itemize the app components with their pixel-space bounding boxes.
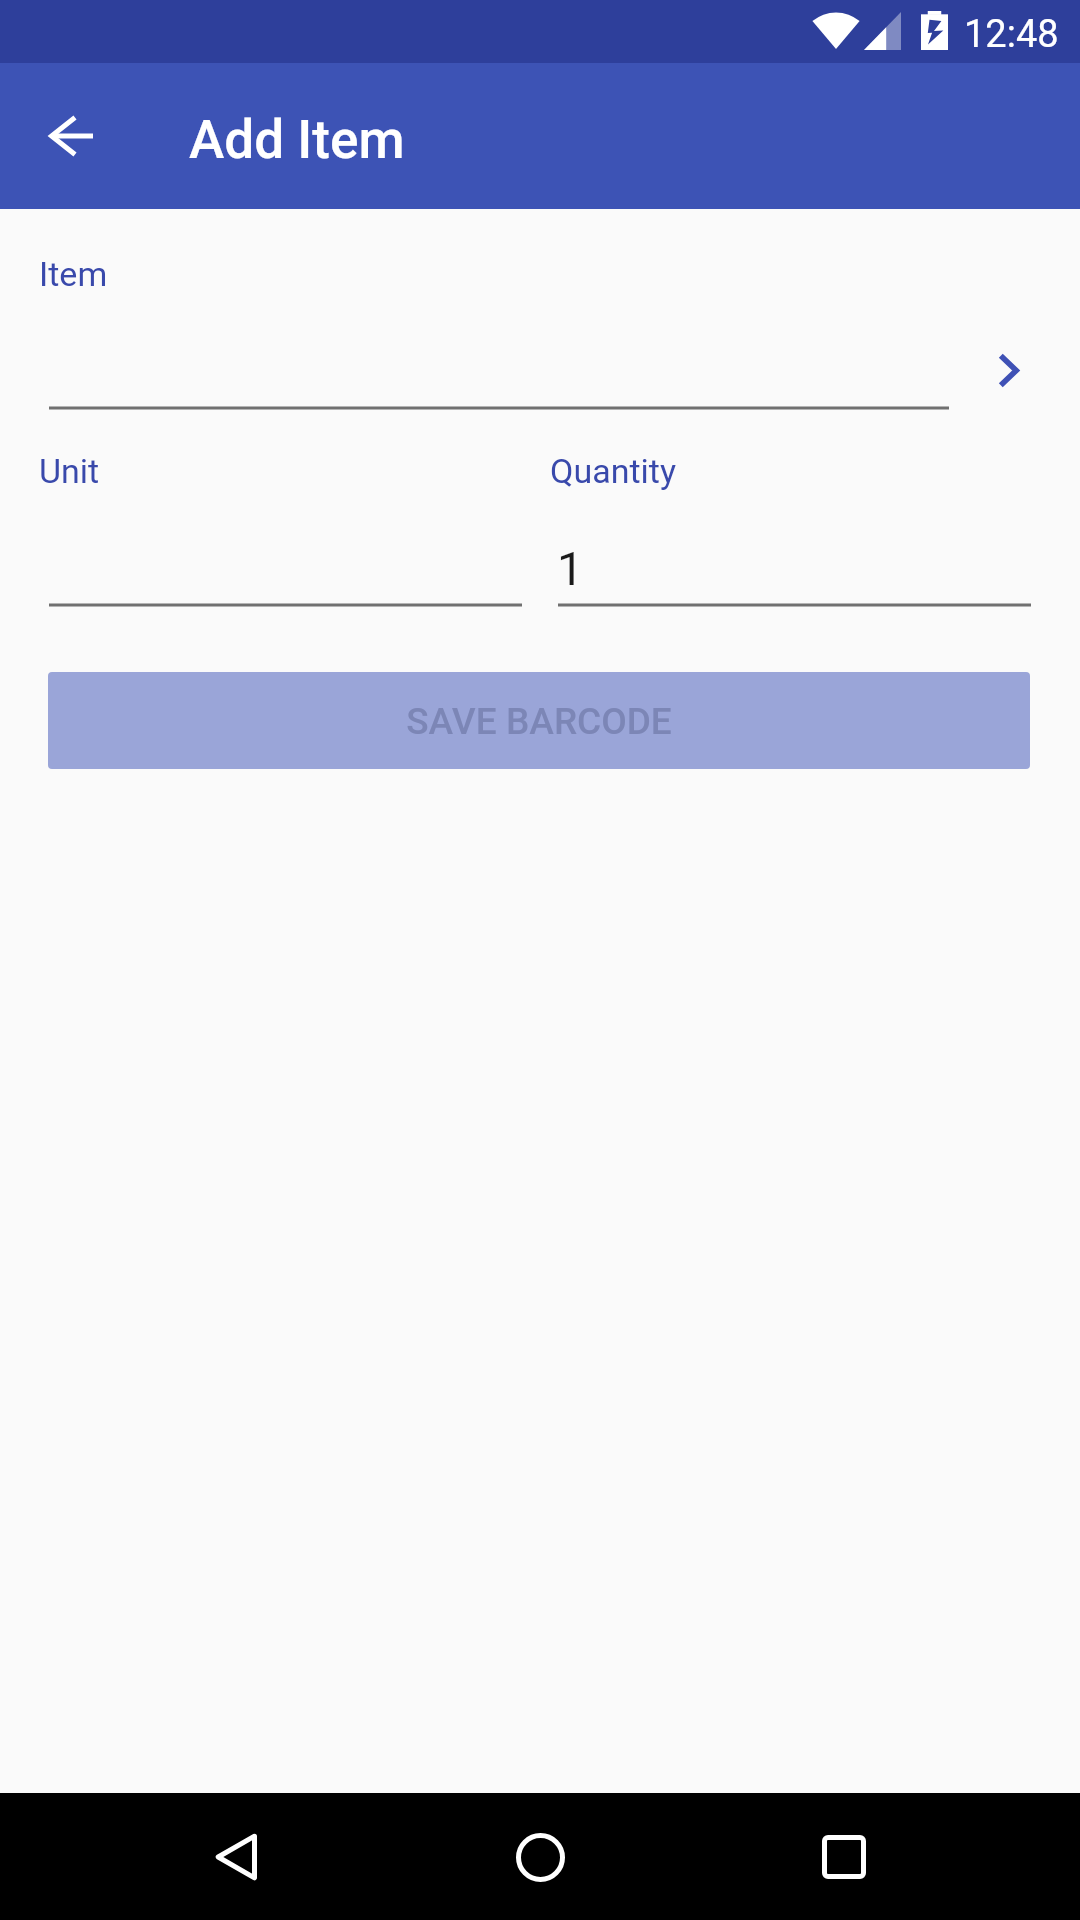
button[interactable]: Unit bbox=[49, 517, 522, 607]
staticText: 1 bbox=[557, 541, 584, 596]
button[interactable]: Recent apps bbox=[784, 1797, 904, 1917]
button[interactable]: Quantity bbox=[558, 517, 1031, 607]
button[interactable]: Pick item bbox=[962, 326, 1054, 414]
staticText: Quantity bbox=[550, 451, 677, 491]
button[interactable]: Back bbox=[176, 1797, 296, 1917]
button[interactable]: SAVE BARCODE bbox=[48, 672, 1030, 769]
button[interactable]: Item bbox=[49, 320, 949, 410]
staticText: Add Item bbox=[189, 109, 405, 171]
staticText: Item bbox=[39, 254, 108, 294]
button[interactable]: Home bbox=[480, 1797, 600, 1917]
staticText: Unit bbox=[39, 451, 100, 491]
staticText: 12:48 bbox=[964, 12, 1059, 57]
staticText: SAVE BARCODE bbox=[406, 700, 672, 743]
button[interactable]: Navigate up bbox=[27, 92, 115, 180]
